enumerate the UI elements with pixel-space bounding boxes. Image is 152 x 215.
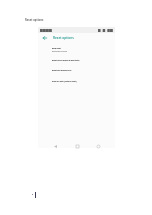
button[interactable]: Navigate up [42,35,48,41]
staticText: Erase all data (factory reset) [52,80,77,82]
button[interactable]: Reset Wi-Fi, mobile & Bluetooth [38,58,115,62]
button[interactable]: Reset app preferences [38,68,115,72]
button[interactable]: Home [73,142,81,150]
button[interactable]: Erase all data (factory reset) [38,79,115,83]
staticText: Reset Wi-Fi, mobile & Bluetooth [52,59,80,61]
staticText: Reset options [25,18,44,22]
staticText: DRM reset [52,47,61,49]
staticText: Reset options [53,36,74,40]
button[interactable]: Recent apps [94,142,102,150]
staticText: Reset app preferences [52,69,72,71]
button[interactable]: Back [51,142,59,150]
staticText: Delete DRM licenses [52,50,68,52]
button[interactable]: DRM reset [38,46,115,53]
